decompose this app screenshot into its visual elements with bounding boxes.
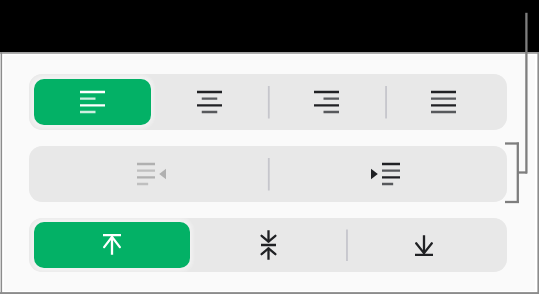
button[interactable]: Decrease indent <box>34 151 268 197</box>
button[interactable]: Justify <box>385 79 502 125</box>
button[interactable]: Align top <box>34 222 190 268</box>
button[interactable]: Align right <box>268 79 385 125</box>
button[interactable]: Increase indent <box>268 151 502 197</box>
button[interactable]: Align middle <box>190 222 346 268</box>
button[interactable]: Align bottom <box>346 222 502 268</box>
button[interactable]: Align center <box>151 79 268 125</box>
button[interactable]: Align left <box>34 79 151 125</box>
